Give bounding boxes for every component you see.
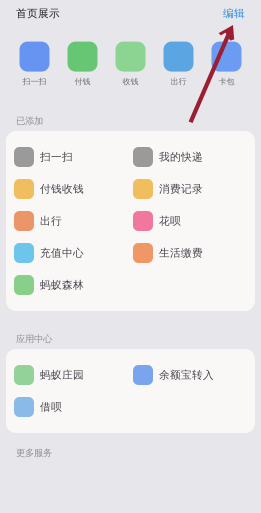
button[interactable]: 蚂蚁森林 bbox=[14, 269, 128, 301]
button[interactable]: 生活缴费 bbox=[133, 237, 247, 269]
staticText: 蚂蚁庄园 bbox=[40, 368, 84, 381]
button[interactable]: 出行 bbox=[154, 42, 202, 86]
staticText: 扫一扫 bbox=[22, 77, 46, 86]
staticText: 出行 bbox=[170, 77, 186, 86]
button[interactable]: 卡包 bbox=[202, 42, 250, 86]
staticText: 应用中心 bbox=[16, 333, 52, 345]
button[interactable]: 充值中心 bbox=[14, 237, 128, 269]
staticText: 付钱 bbox=[74, 77, 90, 86]
staticText: 出行 bbox=[40, 214, 62, 227]
button[interactable]: 扫一扫 bbox=[10, 42, 58, 86]
staticText: 蚂蚁森林 bbox=[40, 278, 84, 291]
staticText: 卡包 bbox=[218, 77, 234, 86]
button[interactable]: 收钱 bbox=[106, 42, 154, 86]
button[interactable]: 借呗 bbox=[14, 391, 128, 423]
button[interactable]: 扫一扫 bbox=[14, 141, 128, 173]
button[interactable]: 付钱 bbox=[58, 42, 106, 86]
staticText: 已添加 bbox=[16, 115, 43, 127]
staticText: 余额宝转入 bbox=[159, 368, 214, 381]
staticText: 花呗 bbox=[159, 214, 181, 227]
button[interactable]: 余额宝转入 bbox=[133, 359, 247, 391]
staticText: 扫一扫 bbox=[40, 150, 73, 163]
staticText: 更多服务 bbox=[16, 447, 52, 459]
staticText: 收钱 bbox=[122, 77, 138, 86]
button[interactable]: 我的快递 bbox=[133, 141, 247, 173]
staticText: 生活缴费 bbox=[159, 246, 203, 259]
staticText: 借呗 bbox=[40, 400, 62, 413]
staticText: 付钱收钱 bbox=[40, 182, 84, 195]
button[interactable]: 付钱收钱 bbox=[14, 173, 128, 205]
button[interactable]: 出行 bbox=[14, 205, 128, 237]
button[interactable]: 编辑 bbox=[223, 7, 245, 20]
staticText: 首页展示 bbox=[16, 7, 60, 20]
staticText: 我的快递 bbox=[159, 150, 203, 163]
staticText: 编辑 bbox=[223, 7, 245, 20]
button[interactable]: 花呗 bbox=[133, 205, 247, 237]
staticText: 充值中心 bbox=[40, 246, 84, 259]
button[interactable]: 蚂蚁庄园 bbox=[14, 359, 128, 391]
staticText: 消费记录 bbox=[159, 182, 203, 195]
button[interactable]: 消费记录 bbox=[133, 173, 247, 205]
